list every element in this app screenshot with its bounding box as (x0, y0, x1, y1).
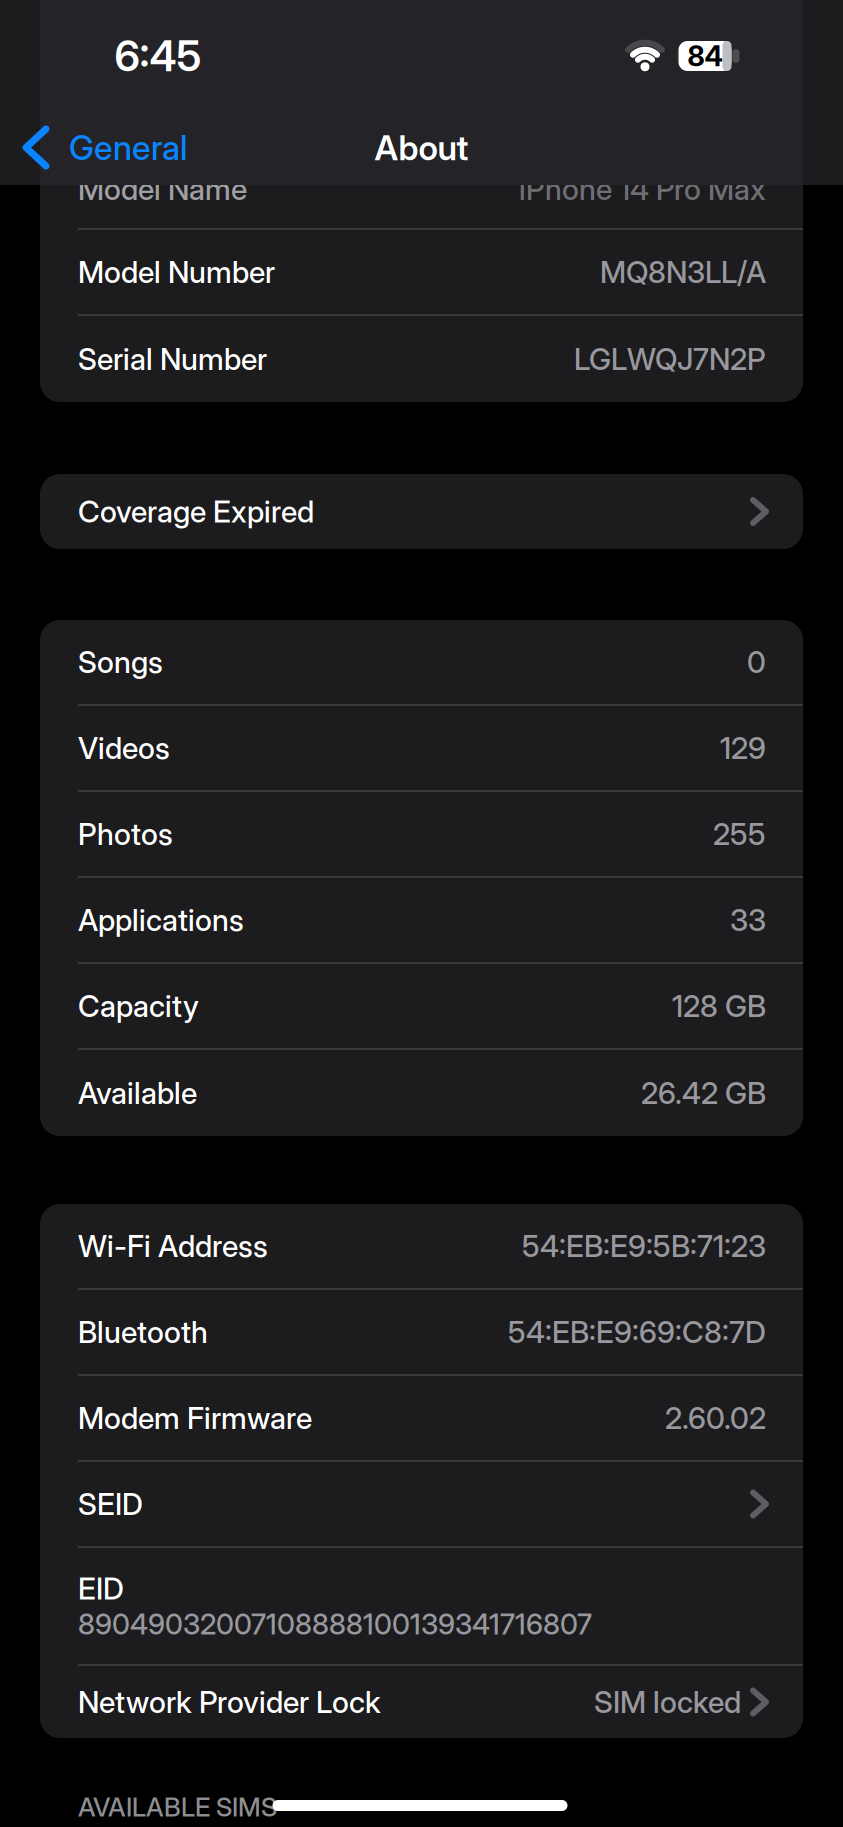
staticText: Wi-Fi Address (78, 1229, 268, 1263)
staticText: 128 GB (672, 989, 766, 1023)
staticText: 54:EB:E9:69:C8:7D (508, 1315, 766, 1349)
staticText: AVAILABLE SIMS (78, 1792, 277, 1822)
staticText: EID (78, 1571, 124, 1606)
staticText: LGLWQJ7N2P (574, 342, 766, 376)
staticText: Bluetooth (78, 1315, 208, 1349)
staticText: 89049032007108888100139341716807 (78, 1608, 592, 1641)
staticText: Videos (78, 731, 170, 765)
staticText: General (69, 128, 187, 167)
staticText: Available (78, 1076, 197, 1110)
staticText: 255 (713, 817, 766, 851)
staticText: 129 (720, 731, 766, 765)
button[interactable]: SEID (40, 1462, 803, 1546)
staticText: MQ8N3LL/A (600, 255, 766, 289)
staticText: Coverage Expired (78, 494, 314, 529)
button[interactable]: Back to General (0, 128, 187, 167)
staticText: 2.60.02 (665, 1401, 766, 1435)
staticText: 54:EB:E9:5B:71:23 (522, 1229, 766, 1263)
staticText: Photos (78, 817, 173, 851)
staticText: Capacity (78, 989, 199, 1023)
staticText: Serial Number (78, 342, 267, 376)
staticText: Modem Firmware (78, 1401, 312, 1435)
staticText: Model Name (78, 172, 247, 206)
staticText: 33 (730, 903, 766, 937)
staticText: Model Number (78, 255, 275, 289)
staticText: Songs (78, 645, 163, 679)
button[interactable]: Coverage Expired (40, 474, 803, 549)
staticText: SIM locked (594, 1685, 741, 1719)
staticText: 26.42 GB (641, 1076, 766, 1110)
staticText: 84 (687, 40, 722, 72)
staticText: Applications (78, 903, 244, 937)
staticText: Network Provider Lock (78, 1685, 381, 1719)
staticText: About (374, 128, 468, 168)
staticText: 0 (747, 645, 766, 679)
staticText: 6:45 (114, 32, 201, 80)
staticText: SEID (78, 1487, 143, 1521)
staticText: iPhone 14 Pro Max (519, 172, 766, 206)
button[interactable]: Network Provider Lock (40, 1666, 803, 1738)
